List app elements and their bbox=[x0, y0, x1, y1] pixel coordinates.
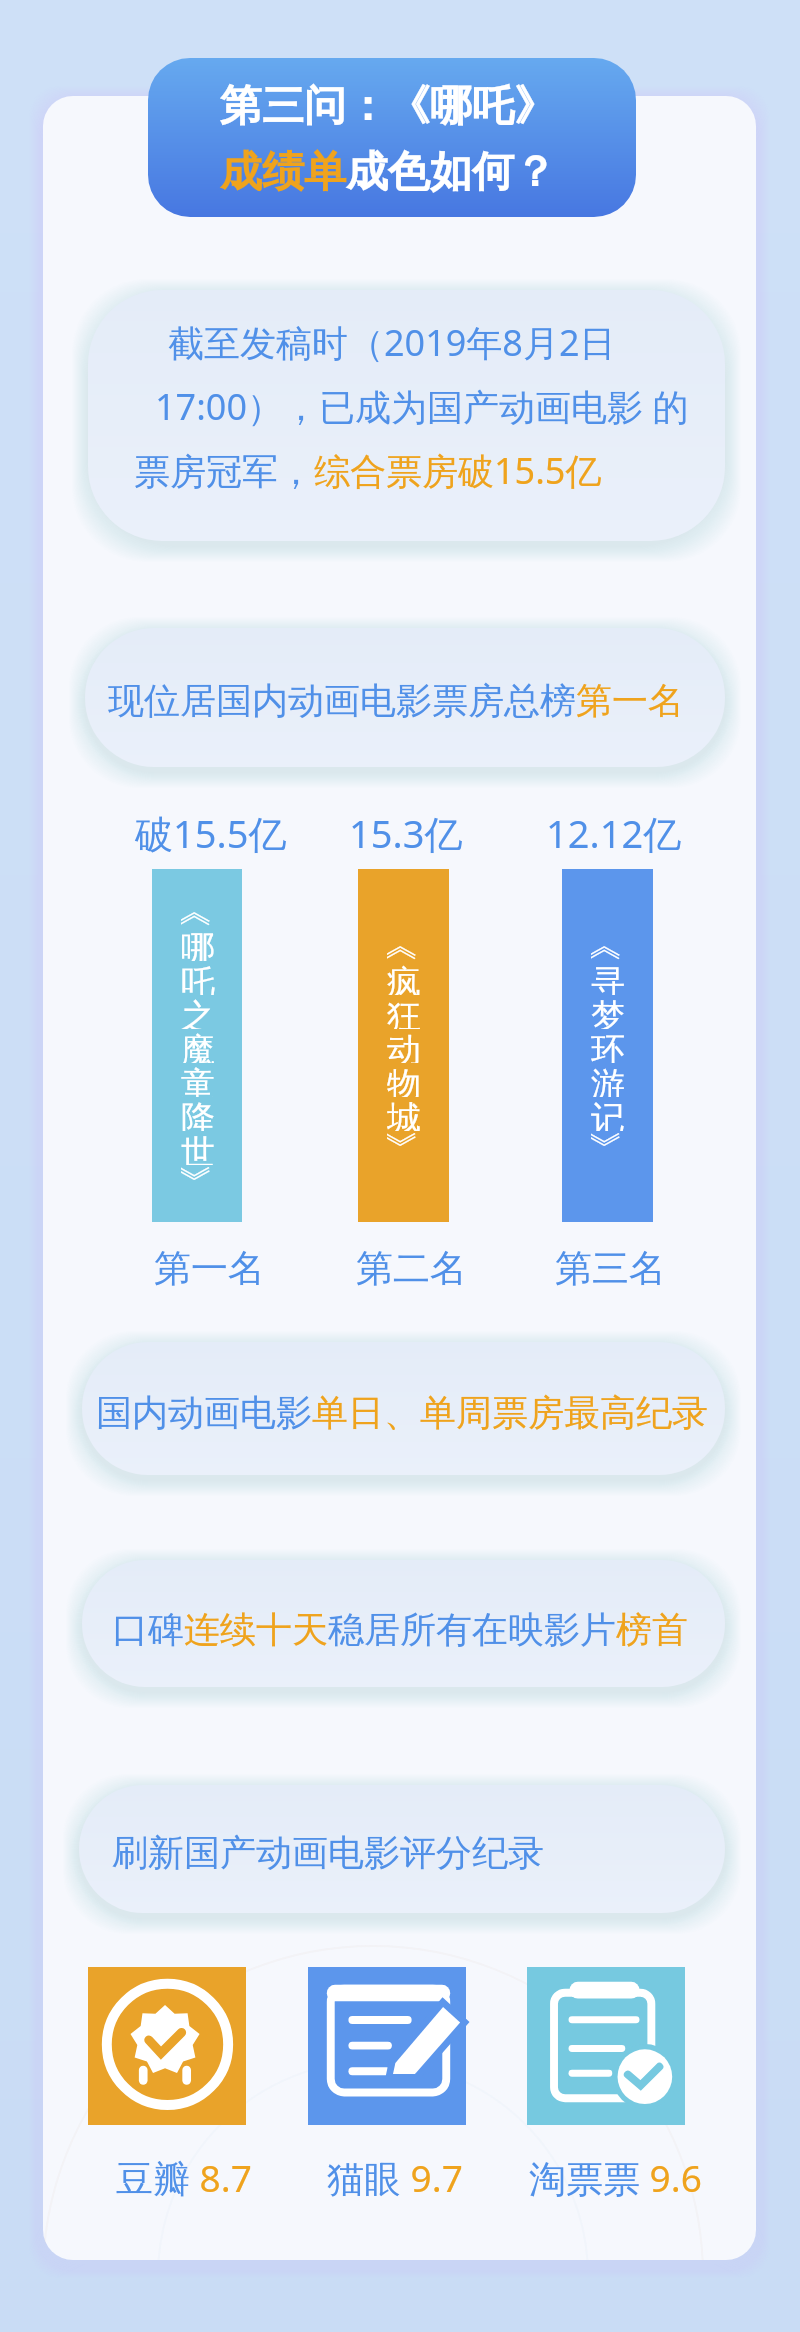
button[interactable]: 《 bbox=[358, 869, 449, 1222]
button[interactable]: 《 bbox=[562, 869, 653, 1222]
staticText: 》 bbox=[387, 1131, 421, 1165]
staticText: 成绩单成色如何？ bbox=[220, 146, 556, 199]
staticText: 17:00），已成为国产动画电影 的 bbox=[155, 382, 689, 431]
staticText: 梦 bbox=[591, 995, 625, 1029]
staticText: 》 bbox=[591, 1131, 625, 1165]
button[interactable]: 淘票票评分 bbox=[527, 1967, 685, 2125]
button[interactable] bbox=[82, 1342, 725, 1475]
staticText: 魔 bbox=[181, 1029, 215, 1063]
staticText: 环 bbox=[591, 1029, 625, 1063]
staticText: 第三问：《哪吒》 bbox=[220, 80, 556, 133]
staticText: 豆瓣 8.7 bbox=[116, 2152, 252, 2203]
staticText: 国内动画电影单日、单周票房最高纪录 bbox=[96, 1390, 708, 1435]
staticText: 物 bbox=[387, 1063, 421, 1097]
staticText: 《 bbox=[181, 893, 215, 927]
staticText: 第一名 bbox=[154, 1245, 265, 1292]
staticText: 现位居国内动画电影票房总榜第一名 bbox=[108, 678, 684, 723]
staticText: 记 bbox=[591, 1097, 625, 1131]
staticText: 破15.5亿 bbox=[135, 807, 287, 859]
button[interactable]: 猫眼评分 bbox=[308, 1967, 466, 2125]
staticText: 截至发稿时（2019年8月2日 bbox=[168, 318, 616, 367]
staticText: 》 bbox=[181, 1165, 215, 1199]
staticText: 15.3亿 bbox=[349, 807, 463, 859]
staticText: 12.12亿 bbox=[546, 807, 682, 859]
staticText: 第二名 bbox=[356, 1245, 467, 1292]
button[interactable]: 《 bbox=[152, 869, 242, 1222]
staticText: 淘票票 9.6 bbox=[529, 2152, 702, 2203]
button[interactable] bbox=[79, 1785, 725, 1913]
button[interactable]: 第三问：《哪吒》 bbox=[148, 58, 636, 217]
staticText: 哪 bbox=[181, 927, 215, 961]
button[interactable]: 豆瓣评分 bbox=[88, 1967, 246, 2125]
staticText: 吒 bbox=[181, 961, 215, 995]
staticText: 刷新国产动画电影评分纪录 bbox=[112, 1830, 544, 1875]
staticText: 寻 bbox=[591, 961, 625, 995]
staticText: 《 bbox=[591, 927, 625, 961]
staticText: 口碑连续十天稳居所有在映影片榜首 bbox=[112, 1607, 688, 1652]
staticText: 票房冠军，综合票房破15.5亿 bbox=[134, 446, 602, 495]
staticText: 童 bbox=[181, 1063, 215, 1097]
staticText: 降 bbox=[181, 1097, 215, 1131]
staticText: 《 bbox=[387, 927, 421, 961]
staticText: 游 bbox=[591, 1063, 625, 1097]
staticText: 动 bbox=[387, 1029, 421, 1063]
button[interactable] bbox=[85, 628, 725, 767]
staticText: 第三名 bbox=[555, 1245, 666, 1292]
staticText: 世 bbox=[181, 1131, 215, 1165]
staticText: 城 bbox=[387, 1097, 421, 1131]
staticText: 狂 bbox=[387, 995, 421, 1029]
staticText: 疯 bbox=[387, 961, 421, 995]
button[interactable] bbox=[82, 1560, 725, 1687]
button[interactable] bbox=[88, 290, 725, 541]
staticText: 之 bbox=[181, 995, 215, 1029]
staticText: 猫眼 9.7 bbox=[327, 2152, 463, 2203]
